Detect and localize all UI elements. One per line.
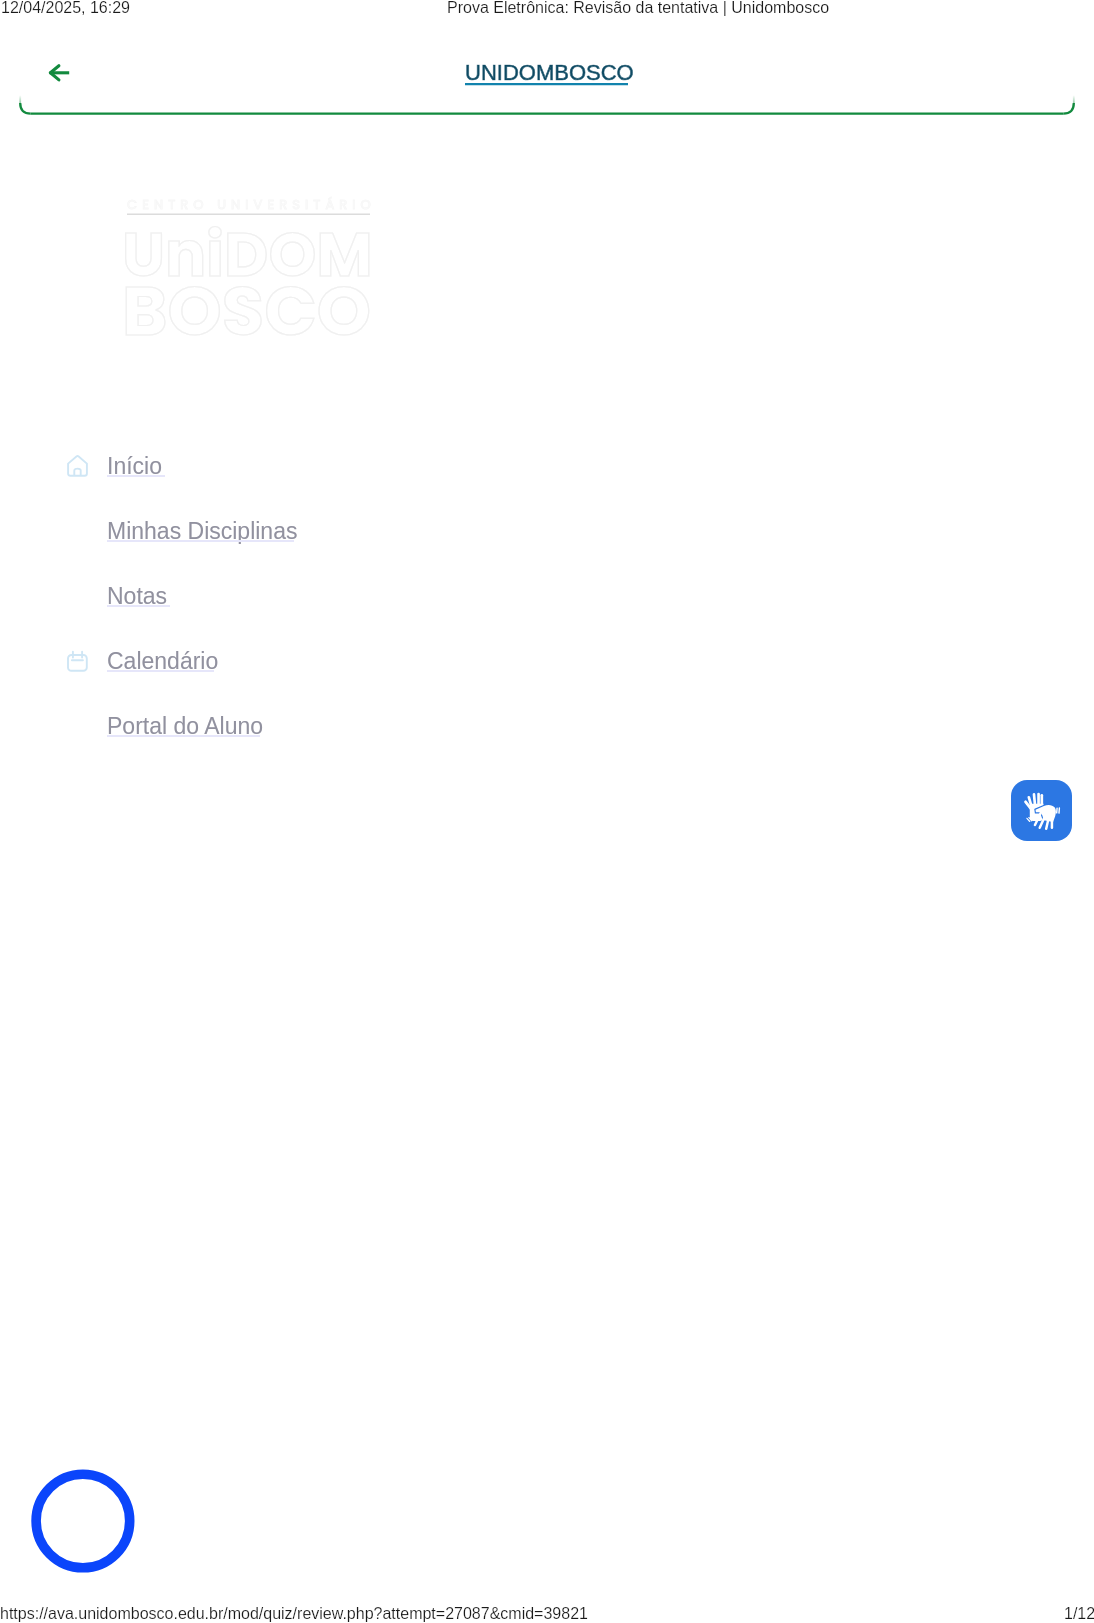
- button[interactable]: Minhas Disciplinas: [56, 514, 396, 548]
- button[interactable]: Calendário: [56, 644, 396, 678]
- staticText: 12/04/2025, 16:29: [1, 0, 131, 17]
- staticText: Início: [107, 453, 162, 479]
- button[interactable]: UNIDOMBOSCO: [465, 60, 634, 85]
- button[interactable]: VLibras acessibilidade: [1011, 780, 1072, 841]
- staticText: https://ava.unidombosco.edu.br/mod/quiz/…: [0, 1605, 588, 1623]
- button[interactable]: Portal do Aluno: [56, 709, 396, 743]
- button[interactable]: Início: [56, 449, 396, 483]
- button[interactable]: Notas: [56, 579, 396, 613]
- staticText: 1/12: [1064, 1605, 1094, 1623]
- staticText: UniDOM: [122, 212, 373, 297]
- staticText: Calendário: [107, 648, 219, 674]
- staticText: BOSCO: [122, 263, 371, 360]
- staticText: Notas: [107, 583, 168, 609]
- staticText: Portal do Aluno: [107, 713, 264, 739]
- staticText: UNIDOMBOSCO: [465, 60, 634, 85]
- staticText: Prova Eletrônica: Revisão da tentativa |…: [447, 0, 830, 17]
- staticText: UNIDOMBOSCO: [465, 60, 634, 85]
- button[interactable]: Voltar: [40, 54, 80, 94]
- staticText: Minhas Disciplinas: [107, 518, 298, 544]
